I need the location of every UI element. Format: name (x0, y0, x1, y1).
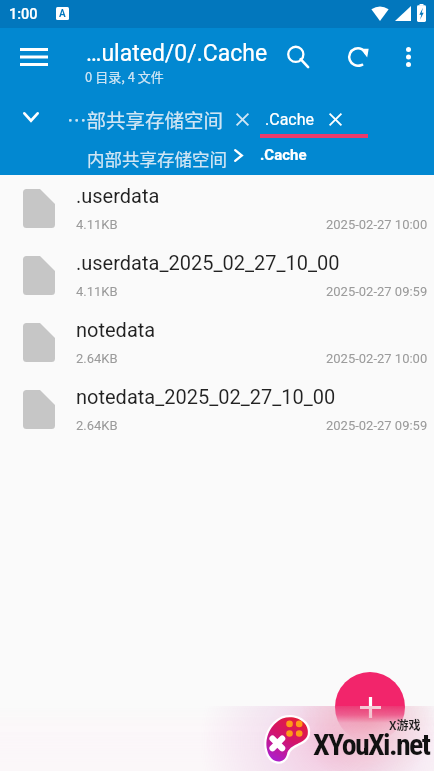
staticText: A (59, 8, 66, 20)
staticText: 2025-02-27 10:00 (326, 217, 428, 232)
staticText: 2025-02-27 09:59 (326, 284, 428, 299)
button[interactable]: …部共享存储空间 (67, 104, 249, 134)
button[interactable]: .userdata_2025_02_27_10_00 (0, 242, 434, 309)
button[interactable]: Add (335, 672, 405, 742)
staticText: XYouXi.net (313, 727, 430, 762)
staticText: 2.64KB (76, 351, 118, 366)
staticText: notedata (76, 318, 421, 341)
staticText: .Cache (265, 110, 315, 129)
staticText: .userdata_2025_02_27_10_00 (76, 251, 421, 274)
staticText: …部共享存储空间 (67, 105, 224, 133)
staticText: 4.11KB (76, 217, 118, 232)
button[interactable]: .Cache (260, 146, 307, 164)
button[interactable]: .Cache (265, 104, 342, 134)
staticText: notedata_2025_02_27_10_00 (76, 385, 421, 408)
staticText: 2.64KB (76, 418, 118, 433)
button[interactable]: Search (274, 33, 322, 81)
button[interactable]: .userdata (0, 175, 434, 242)
staticText: X游戏 (389, 716, 421, 733)
staticText: 2025-02-27 09:59 (326, 418, 428, 433)
button[interactable]: 内部共享存储空间 (87, 146, 227, 171)
button[interactable]: notedata_2025_02_27_10_00 (0, 376, 434, 443)
staticText: .userdata (76, 184, 421, 207)
button[interactable]: notedata (0, 309, 434, 376)
button[interactable]: Show all tabs (9, 95, 53, 139)
button[interactable]: More options (384, 33, 432, 81)
staticText: 1:00 (9, 6, 38, 23)
staticText: …ulated/0/.Cache (86, 40, 281, 67)
staticText: 2025-02-27 10:00 (326, 351, 428, 366)
button[interactable]: Refresh (334, 33, 382, 81)
button[interactable]: Navigation menu (6, 29, 62, 85)
staticText: 4.11KB (76, 284, 118, 299)
staticText: 0 目录, 4 文件 (85, 67, 164, 86)
